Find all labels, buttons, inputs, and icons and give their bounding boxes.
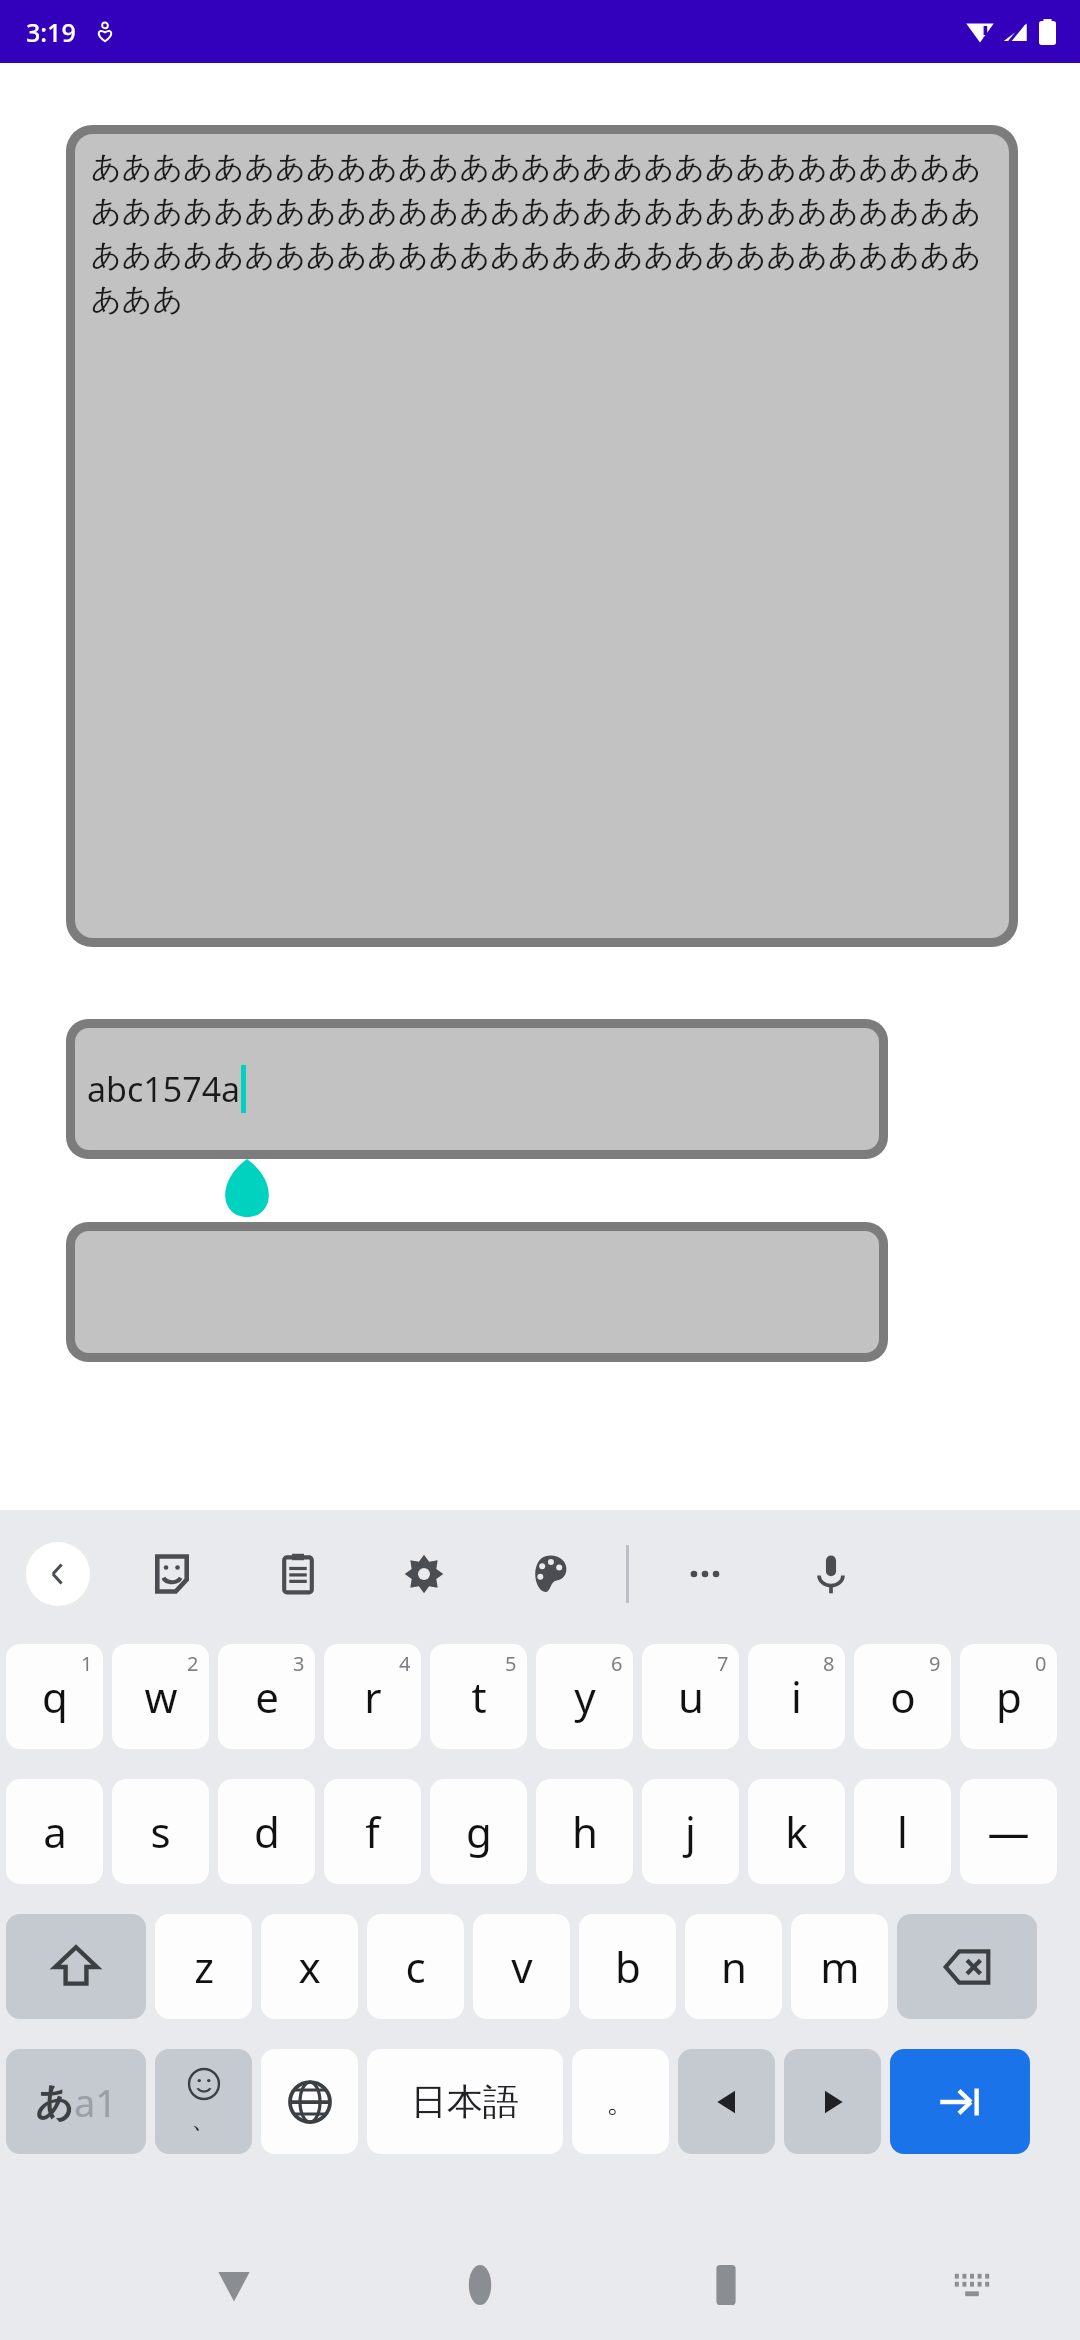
button[interactable]: Hide keyboard <box>186 2237 282 2333</box>
button[interactable]: Home <box>432 2237 528 2333</box>
button[interactable]: k <box>748 1779 845 1884</box>
button[interactable]: b <box>579 1914 676 2019</box>
button[interactable]: Recents <box>678 2237 774 2333</box>
button[interactable]: w <box>112 1644 209 1749</box>
staticText: a <box>43 1803 67 1860</box>
staticText: o <box>890 1668 916 1725</box>
staticText: d <box>254 1803 280 1860</box>
staticText: s <box>150 1803 171 1860</box>
button[interactable]: Switch keyboard <box>924 2237 1020 2333</box>
button[interactable]: ああああああああああああああああああああああああああああああああああああああああ… <box>75 134 1009 938</box>
staticText: 。 <box>606 2083 636 2121</box>
staticText: t <box>471 1668 487 1725</box>
staticText: e <box>255 1668 279 1725</box>
button[interactable]: 。 <box>572 2049 669 2154</box>
button[interactable]: Settings <box>392 1542 456 1606</box>
button[interactable]: Back <box>26 1542 90 1606</box>
button[interactable]: c <box>367 1914 464 2019</box>
button[interactable]: e <box>218 1644 315 1749</box>
button[interactable]: f <box>324 1779 421 1884</box>
button[interactable]: a <box>6 1779 103 1884</box>
button[interactable]: z <box>155 1914 252 2019</box>
button[interactable]: Emoji <box>155 2049 252 2154</box>
staticText: l <box>897 1803 908 1860</box>
button[interactable]: r <box>324 1644 421 1749</box>
staticText: 8 <box>823 1650 835 1677</box>
button[interactable]: x <box>261 1914 358 2019</box>
button[interactable]: d <box>218 1779 315 1884</box>
staticText: g <box>466 1803 492 1860</box>
staticText: 6 <box>611 1650 623 1677</box>
button[interactable]: Input mode <box>6 2049 146 2154</box>
staticText: 日本語 <box>411 2079 519 2124</box>
staticText: k <box>785 1803 808 1860</box>
button[interactable]: Shift <box>6 1914 146 2019</box>
staticText: w <box>144 1668 178 1725</box>
button[interactable]: u <box>642 1644 739 1749</box>
staticText: c <box>405 1938 426 1995</box>
button[interactable]: o <box>854 1644 951 1749</box>
button[interactable]: Change keyboard <box>261 2049 358 2154</box>
staticText: 4 <box>399 1650 411 1677</box>
button[interactable]: Clipboard <box>266 1542 330 1606</box>
staticText: m <box>820 1938 860 1995</box>
button[interactable]: More options <box>673 1542 737 1606</box>
button[interactable]: l <box>854 1779 951 1884</box>
button[interactable]: y <box>536 1644 633 1749</box>
staticText: 、 <box>191 2103 217 2136</box>
button[interactable]: Backspace <box>897 1914 1037 2019</box>
button[interactable]: Voice input <box>799 1542 863 1606</box>
button[interactable]: j <box>642 1779 739 1884</box>
staticText: 3 <box>293 1650 305 1677</box>
staticText: あ <box>35 2078 74 2126</box>
staticText: — <box>987 1803 1030 1860</box>
button[interactable]: 日本語 <box>367 2049 563 2154</box>
button[interactable]: q <box>6 1644 103 1749</box>
staticText: i <box>791 1668 802 1725</box>
staticText: n <box>721 1938 747 1995</box>
staticText: v <box>511 1938 533 1995</box>
staticText: x <box>298 1938 321 1995</box>
staticText: 5 <box>505 1650 517 1677</box>
button[interactable]: s <box>112 1779 209 1884</box>
staticText: 0 <box>1035 1650 1047 1677</box>
staticText: p <box>996 1668 1022 1725</box>
staticText: 9 <box>929 1650 941 1677</box>
staticText: h <box>572 1803 598 1860</box>
staticText: q <box>42 1668 68 1725</box>
button[interactable]: Move left <box>678 2049 775 2154</box>
button[interactable]: Move right <box>784 2049 881 2154</box>
staticText: b <box>615 1938 641 1995</box>
staticText: r <box>364 1668 382 1725</box>
button[interactable]: t <box>430 1644 527 1749</box>
button[interactable]: p <box>960 1644 1057 1749</box>
staticText: abc1574a <box>87 1066 241 1112</box>
staticText: j <box>685 1803 696 1860</box>
button[interactable]: Stickers <box>140 1542 204 1606</box>
staticText: 3:19 <box>26 15 76 49</box>
staticText: u <box>678 1668 704 1725</box>
button[interactable]: — <box>960 1779 1057 1884</box>
staticText: ああああああああああああああああああああああああああああああああああああああああ… <box>91 148 999 318</box>
staticText: 1 <box>81 1650 93 1677</box>
button[interactable]: abc1574a <box>75 1028 879 1150</box>
staticText: 2 <box>187 1650 199 1677</box>
staticText: 7 <box>717 1650 729 1677</box>
button[interactable]: g <box>430 1779 527 1884</box>
staticText: y <box>574 1668 596 1725</box>
staticText: z <box>194 1938 214 1995</box>
button[interactable]: v <box>473 1914 570 2019</box>
staticText: f <box>365 1803 380 1860</box>
button[interactable]: h <box>536 1779 633 1884</box>
button[interactable]: Theme <box>518 1542 582 1606</box>
button[interactable]: n <box>685 1914 782 2019</box>
button[interactable]: m <box>791 1914 888 2019</box>
button[interactable]: Next <box>890 2049 1030 2154</box>
button[interactable]: i <box>748 1644 845 1749</box>
staticText: a1 <box>74 2076 118 2128</box>
